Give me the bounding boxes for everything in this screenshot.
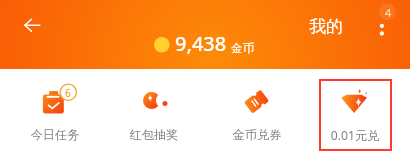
staticText: 红包抽奖 — [114, 127, 194, 142]
button[interactable] — [319, 79, 392, 151]
staticText: 今日任务 — [15, 127, 95, 142]
button[interactable] — [220, 79, 293, 151]
button[interactable]: 我的 — [304, 13, 348, 40]
staticText: 金币 — [231, 41, 254, 55]
staticText: 我的 — [309, 16, 343, 37]
button[interactable] — [19, 79, 92, 151]
button[interactable]: Back — [14, 8, 50, 44]
button[interactable]: More options — [370, 4, 400, 34]
staticText: 0.01元兑 — [315, 127, 395, 144]
staticText: 6 — [65, 86, 71, 100]
staticText: 金币兑券 — [217, 127, 297, 142]
staticText: 4 — [385, 5, 392, 20]
button[interactable] — [118, 79, 191, 151]
staticText: 9,438 — [175, 30, 227, 57]
